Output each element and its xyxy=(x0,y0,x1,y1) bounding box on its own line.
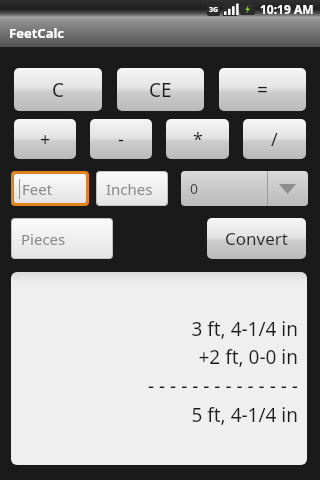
staticText: FeetCalc xyxy=(9,24,65,42)
staticText: = xyxy=(257,77,268,103)
staticText: C xyxy=(52,77,65,103)
staticText: + xyxy=(40,127,51,152)
staticText: 5 ft, 4-1/4 in xyxy=(191,402,298,428)
button[interactable]: C xyxy=(14,68,102,111)
staticText: 10:19 AM xyxy=(260,1,314,17)
button[interactable]: - xyxy=(90,119,152,159)
staticText: 3 ft, 4-1/4 in xyxy=(191,316,298,342)
button[interactable]: Unit selector xyxy=(181,171,308,206)
staticText: 3G xyxy=(209,5,219,15)
staticText: / xyxy=(271,127,278,152)
button[interactable]: Inches xyxy=(96,171,168,206)
staticText: - - - - - - - - - - - - - - xyxy=(148,373,298,399)
staticText: - xyxy=(118,127,124,152)
staticText: * xyxy=(193,127,203,152)
staticText: CE xyxy=(149,77,172,103)
staticText: Feet xyxy=(22,179,53,199)
button[interactable]: Convert xyxy=(207,218,306,259)
button[interactable]: + xyxy=(14,119,76,159)
button[interactable]: CE xyxy=(117,68,204,111)
button[interactable]: = xyxy=(219,68,306,111)
button[interactable]: Feet xyxy=(11,171,89,206)
staticText: +2 ft, 0-0 in xyxy=(198,344,298,370)
button[interactable]: * xyxy=(166,119,229,159)
staticText: 0 xyxy=(190,179,199,198)
staticText: Convert xyxy=(225,227,288,250)
staticText: Pieces xyxy=(21,229,66,249)
staticText: Inches xyxy=(106,179,153,199)
button[interactable]: / xyxy=(243,119,306,159)
button[interactable]: Pieces xyxy=(11,218,113,259)
